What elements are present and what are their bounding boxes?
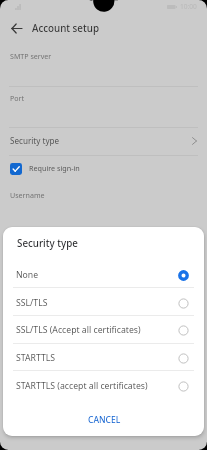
button[interactable]: None bbox=[3, 262, 204, 290]
button[interactable]: SSL/TLS bbox=[3, 290, 204, 318]
staticText: STARTTLS bbox=[16, 352, 56, 364]
staticText: None bbox=[16, 269, 39, 281]
button[interactable]: SSL/TLS (Accept all certificates) bbox=[3, 317, 204, 345]
button[interactable]: Require sign-in bbox=[0, 157, 207, 180]
button[interactable]: CANCEL bbox=[75, 408, 133, 432]
staticText: SMTP server bbox=[10, 51, 52, 61]
staticText: CANCEL bbox=[88, 414, 121, 426]
staticText: Security type bbox=[17, 237, 78, 250]
staticText: Require sign-in bbox=[29, 163, 80, 173]
staticText: 10:00 bbox=[180, 2, 197, 11]
staticText: SSL/TLS bbox=[16, 297, 48, 309]
staticText: SSL/TLS (Accept all certificates) bbox=[16, 324, 141, 336]
staticText: STARTTLS (accept all certificates) bbox=[16, 380, 148, 392]
button[interactable]: STARTTLS (accept all certificates) bbox=[3, 373, 204, 401]
staticText: Port bbox=[10, 93, 25, 103]
staticText: Account setup bbox=[32, 22, 99, 35]
button[interactable]: Security type bbox=[0, 129, 207, 155]
staticText: Security type bbox=[10, 135, 60, 146]
button[interactable]: STARTTLS bbox=[3, 345, 204, 373]
staticText: Username bbox=[10, 190, 45, 200]
button[interactable]: Back bbox=[5, 17, 27, 39]
